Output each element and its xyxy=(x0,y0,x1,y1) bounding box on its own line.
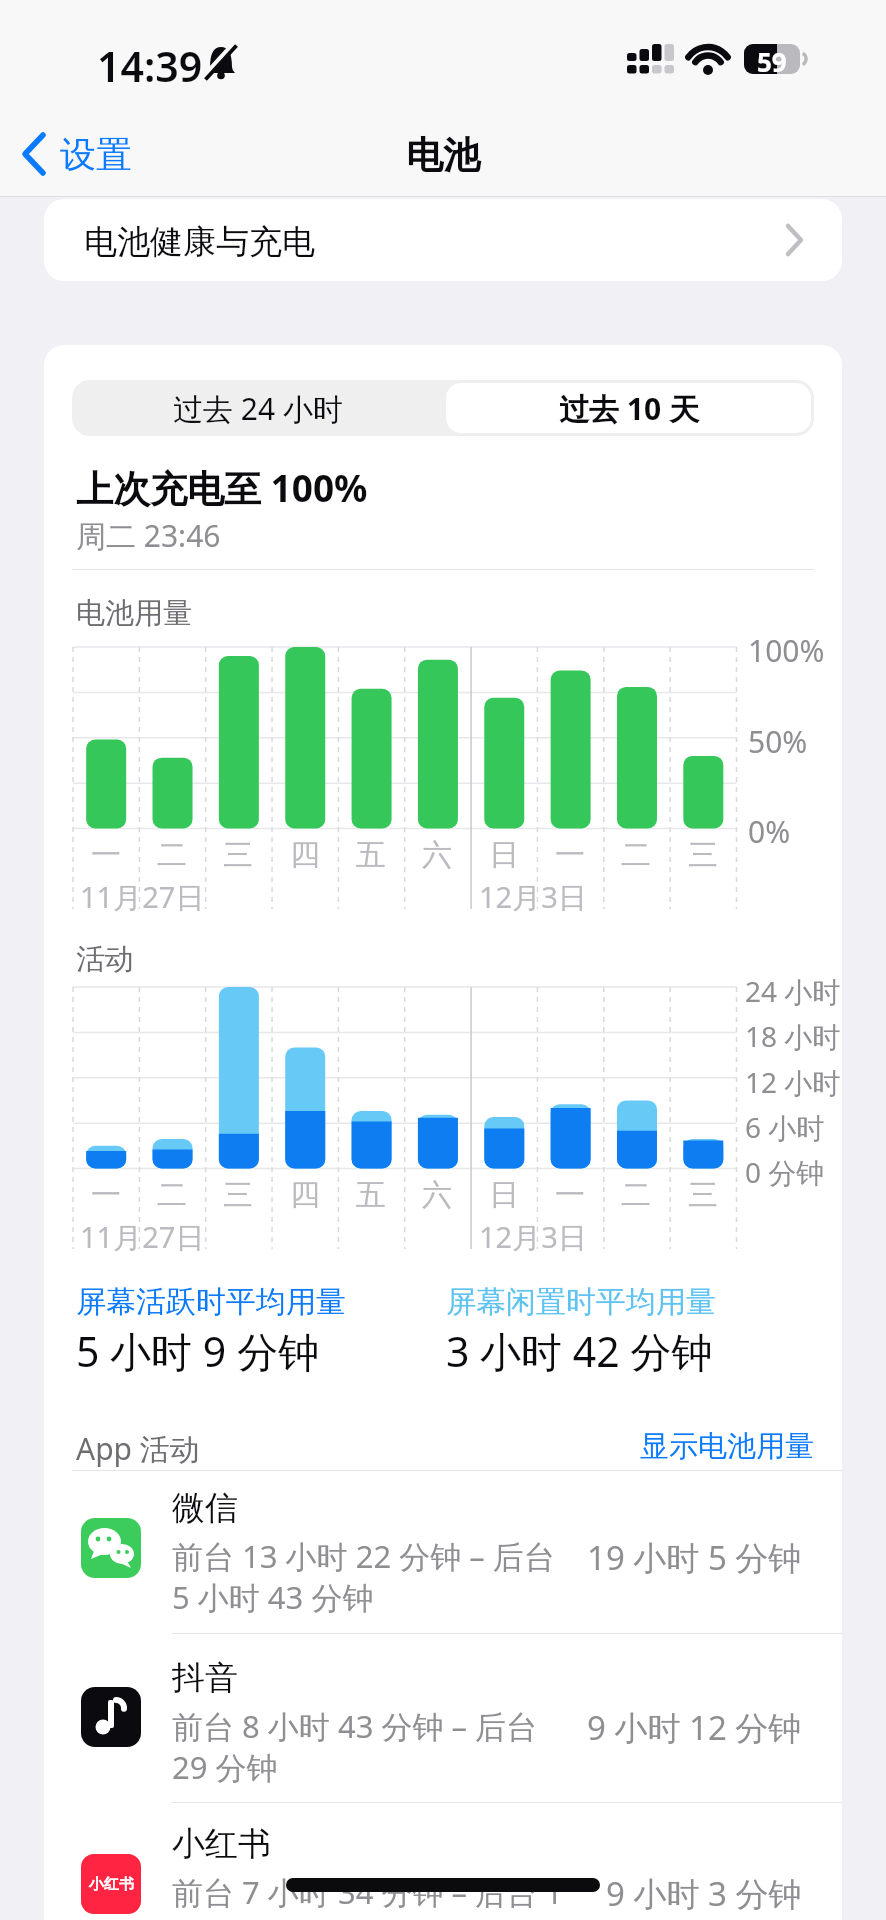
staticText: 50% xyxy=(748,721,808,762)
staticText: 日 xyxy=(489,836,519,874)
staticText: 设置 xyxy=(60,132,132,177)
staticText: 19 小时 5 分钟 xyxy=(587,1535,802,1580)
staticText: 29 分钟 xyxy=(172,1746,278,1788)
staticText: 11月27日 xyxy=(80,877,205,917)
staticText: 前台 13 小时 22 分钟 – 后台 xyxy=(172,1535,555,1577)
staticText: 18 小时 xyxy=(745,1017,841,1055)
staticText: 三 xyxy=(223,1176,253,1214)
staticText: 12 小时 xyxy=(745,1063,841,1101)
staticText: 9 小时 12 分钟 xyxy=(587,1705,802,1750)
staticText: 小红书 xyxy=(172,1823,271,1865)
staticText: 电池用量 xyxy=(76,595,192,632)
staticText: 前台 8 小时 43 分钟 – 后台 xyxy=(172,1705,538,1747)
button[interactable]: 设置 xyxy=(20,130,132,178)
staticText: 抖音 xyxy=(172,1657,238,1699)
staticText: 二 xyxy=(157,836,187,874)
staticText: 二 xyxy=(621,1176,651,1214)
staticText: 电池 xyxy=(406,132,480,179)
staticText: 59 xyxy=(757,44,787,74)
staticText: 上次充电至 100% xyxy=(76,462,368,513)
staticText: 一 xyxy=(555,836,585,874)
staticText: 三 xyxy=(223,836,253,874)
staticText: 9 小时 3 分钟 xyxy=(606,1871,802,1916)
button[interactable] xyxy=(44,1634,842,1802)
staticText: 三 xyxy=(688,836,718,874)
button[interactable]: 显示电池用量 xyxy=(640,1428,814,1465)
staticText: 一 xyxy=(555,1176,585,1214)
staticText: App 活动 xyxy=(76,1428,200,1469)
staticText: 电池健康与充电 xyxy=(84,221,315,263)
staticText: 微信 xyxy=(172,1487,238,1529)
staticText: 3 小时 42 分钟 xyxy=(446,1323,713,1379)
staticText: 0 分钟 xyxy=(745,1153,825,1191)
staticText: 5 小时 9 分钟 xyxy=(76,1323,319,1379)
button[interactable]: 电池健康与充电 xyxy=(44,199,842,281)
staticText: 六 xyxy=(422,1176,452,1214)
staticText: 5 小时 43 分钟 xyxy=(172,1576,374,1618)
staticText: 四 xyxy=(290,1176,320,1214)
staticText: 屏幕闲置时平均用量 xyxy=(446,1283,716,1321)
staticText: 日 xyxy=(489,1176,519,1214)
button[interactable] xyxy=(44,1803,842,1920)
staticText: 五 xyxy=(356,836,386,874)
staticText: 二 xyxy=(621,836,651,874)
button[interactable]: 过去 10 天 xyxy=(443,380,814,436)
staticText: 一 xyxy=(91,1176,121,1214)
staticText: 屏幕活跃时平均用量 xyxy=(76,1283,346,1321)
staticText: 过去 10 天 xyxy=(559,388,699,429)
staticText: 四 xyxy=(290,836,320,874)
staticText: 六 xyxy=(422,836,452,874)
button[interactable]: 过去 24 小时 xyxy=(72,380,443,436)
staticText: 二 xyxy=(157,1176,187,1214)
staticText: 12月3日 xyxy=(479,1217,587,1257)
staticText: 五 xyxy=(356,1176,386,1214)
button[interactable] xyxy=(44,1471,842,1633)
staticText: 6 小时 xyxy=(745,1108,825,1146)
staticText: 100% xyxy=(748,630,825,671)
staticText: 显示电池用量 xyxy=(640,1428,814,1465)
staticText: 活动 xyxy=(76,941,134,978)
staticText: 11月27日 xyxy=(80,1217,205,1257)
staticText: 12月3日 xyxy=(479,877,587,917)
staticText: 0% xyxy=(748,811,791,852)
staticText: 14:39 xyxy=(97,38,203,94)
staticText: 周二 23:46 xyxy=(76,515,221,556)
staticText: 前台 7 小时 34 分钟 – 后台 1 xyxy=(172,1871,563,1913)
staticText: 一 xyxy=(91,836,121,874)
staticText: 过去 24 小时 xyxy=(173,388,343,429)
staticText: 小红书 xyxy=(89,1875,134,1894)
staticText: 24 小时 xyxy=(745,972,841,1010)
staticText: 三 xyxy=(688,1176,718,1214)
